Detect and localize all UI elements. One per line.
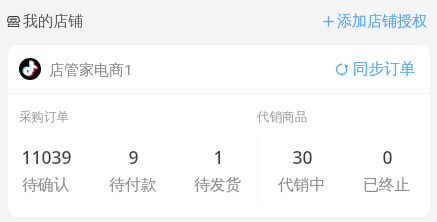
staticText: 店管家电商1	[49, 59, 133, 79]
staticText: 待发货	[194, 175, 242, 195]
button[interactable]: 0	[344, 145, 430, 195]
other: 同步订单	[335, 62, 349, 76]
button[interactable]: 同步订单	[335, 52, 415, 86]
button[interactable]: 30	[259, 145, 345, 195]
staticText: 待付款	[109, 175, 157, 195]
staticText: 我的店铺	[23, 12, 83, 31]
staticText: 30	[292, 145, 313, 169]
staticText: 11039	[21, 145, 72, 169]
staticText: 代销商品	[257, 109, 307, 125]
button[interactable]: 我的店铺	[7, 12, 83, 31]
staticText: 0	[382, 145, 393, 169]
button[interactable]: 1	[175, 145, 261, 195]
staticText: 已终止	[363, 175, 411, 195]
staticText: 采购订单	[19, 109, 69, 125]
staticText: 添加店铺授权	[337, 12, 427, 31]
button[interactable]: 11039	[8, 145, 89, 195]
staticText: 代销中	[278, 175, 326, 195]
staticText: 同步订单	[353, 59, 415, 79]
staticText: 待确认	[22, 175, 70, 195]
button[interactable]: 9	[90, 145, 176, 195]
staticText: 9	[128, 145, 139, 169]
button[interactable]: 添加店铺授权	[323, 6, 427, 37]
staticText: 1	[213, 145, 224, 169]
